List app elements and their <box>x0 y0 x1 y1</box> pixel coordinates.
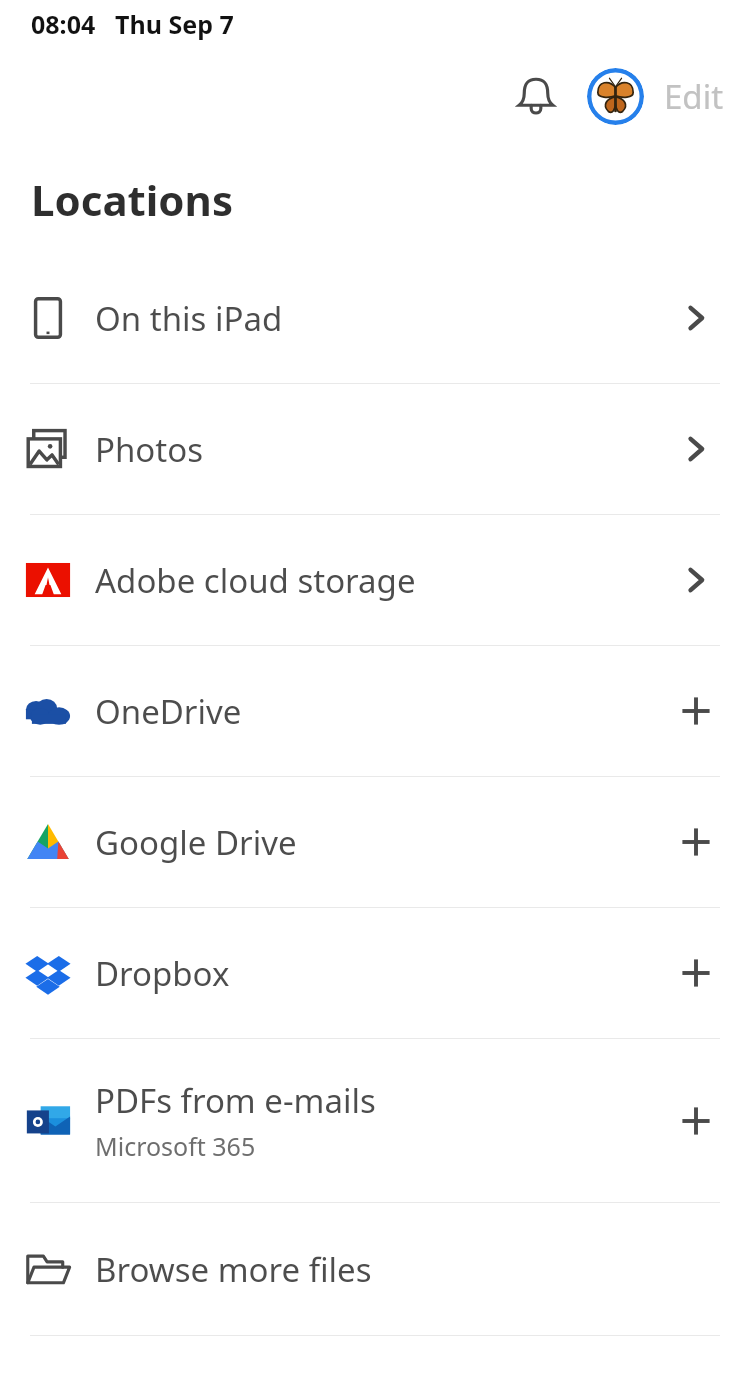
staticText: PDFs from e-mails <box>95 1078 376 1123</box>
button[interactable]: Profile <box>587 68 644 125</box>
other: OneDrive <box>25 688 71 734</box>
other: Add PDFs from e-mails <box>679 1104 713 1138</box>
staticText: Thu Sep 7 <box>115 7 234 41</box>
button[interactable]: Photos <box>0 384 750 514</box>
button[interactable]: On this iPad <box>0 253 750 383</box>
other: Outlook <box>25 1098 71 1144</box>
button[interactable]: Adobe <box>0 515 750 645</box>
other: Add Dropbox <box>679 956 713 990</box>
button[interactable]: OneDrive <box>0 646 750 776</box>
other: Adobe <box>25 557 71 603</box>
other: Open Photos <box>679 432 713 466</box>
other: Google Drive <box>25 819 71 865</box>
other: Add OneDrive <box>679 694 713 728</box>
button[interactable]: Outlook <box>0 1039 750 1202</box>
other: Folder <box>25 1246 71 1292</box>
button[interactable]: Edit <box>664 74 724 119</box>
other: Dropbox <box>25 950 71 996</box>
staticText: Google Drive <box>95 820 297 865</box>
staticText: Adobe cloud storage <box>95 558 416 603</box>
button[interactable]: Dropbox <box>0 908 750 1038</box>
staticText: Photos <box>95 427 204 472</box>
staticText: OneDrive <box>95 689 242 734</box>
staticText: Edit <box>664 74 724 119</box>
button[interactable]: Notifications <box>503 63 569 129</box>
other: Photos <box>25 426 71 472</box>
other: On this iPad <box>25 295 71 341</box>
other: Open On this iPad <box>679 301 713 335</box>
other: Add Google Drive <box>679 825 713 859</box>
staticText: Dropbox <box>95 951 230 996</box>
other: Open Adobe cloud storage <box>679 563 713 597</box>
staticText: 08:04 <box>31 7 96 41</box>
staticText: Microsoft 365 <box>95 1129 256 1163</box>
staticText: Locations <box>31 171 233 228</box>
button[interactable]: Google Drive <box>0 777 750 907</box>
button[interactable]: Folder <box>0 1203 750 1335</box>
staticText: On this iPad <box>95 296 283 341</box>
staticText: Browse more files <box>95 1247 372 1292</box>
